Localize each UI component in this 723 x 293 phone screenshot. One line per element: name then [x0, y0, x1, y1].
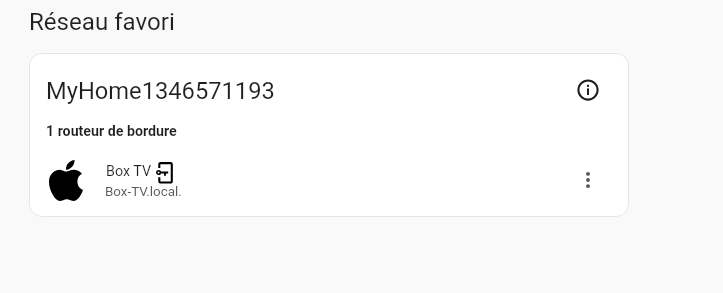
staticText: Réseau favori [29, 8, 175, 36]
staticText: 1 routeur de bordure [46, 123, 177, 140]
staticText: Box TV [106, 163, 152, 180]
button[interactable]: Plus d'options [564, 156, 612, 204]
other: Connexion [156, 162, 174, 184]
staticText: MyHome1346571193 [46, 77, 275, 105]
button[interactable]: Box TV [30, 148, 628, 216]
staticText: Box-TV.local. [105, 184, 182, 200]
button[interactable]: Informations sur le réseau [564, 66, 612, 114]
